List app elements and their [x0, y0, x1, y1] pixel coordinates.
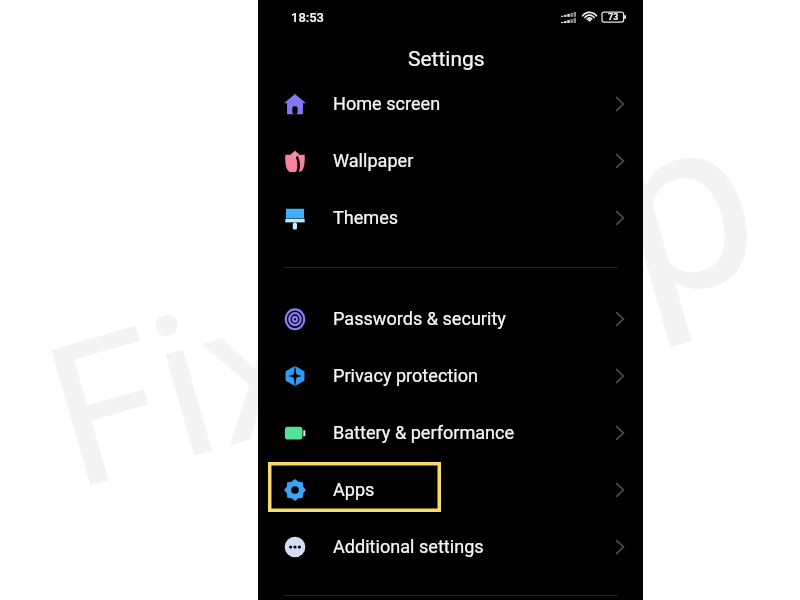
staticText: Settings	[408, 47, 485, 72]
button[interactable]: Battery & performance	[258, 404, 643, 461]
staticText: Privacy protection	[333, 365, 478, 386]
button[interactable]: Wallpaper	[258, 132, 643, 189]
staticText: Additional settings	[333, 536, 484, 557]
staticText: Themes	[333, 207, 399, 228]
staticText: Wallpaper	[333, 150, 414, 171]
staticText: Fix	[24, 242, 334, 536]
staticText: Home screen	[333, 93, 441, 114]
staticText: Apps	[333, 479, 375, 500]
other: Wi-Fi	[582, 11, 597, 22]
staticText: p	[580, 53, 787, 360]
other: Mobile signal	[561, 12, 576, 23]
other: Battery 73 percent	[602, 12, 626, 22]
button[interactable]: Additional settings	[258, 518, 643, 575]
staticText: 18:53	[291, 10, 325, 25]
button[interactable]: Privacy protection	[258, 347, 643, 404]
button[interactable]: Themes	[258, 189, 643, 246]
staticText: Passwords & security	[333, 308, 506, 329]
staticText: Battery & performance	[333, 422, 515, 443]
button[interactable]: Apps	[258, 461, 643, 518]
button[interactable]: Passwords & security	[258, 290, 643, 347]
staticText: 73	[608, 12, 619, 22]
button[interactable]: Home screen	[258, 75, 643, 132]
